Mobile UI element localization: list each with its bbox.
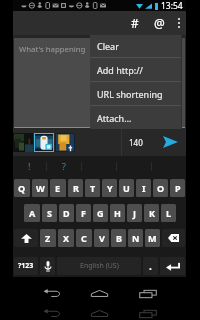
staticText: N	[132, 232, 140, 244]
button[interactable]: Facebook account	[55, 133, 75, 152]
staticText: English (US)	[80, 261, 119, 271]
button[interactable]: A	[24, 204, 40, 222]
staticText: X	[63, 232, 70, 244]
button[interactable]: K	[144, 204, 159, 222]
staticText: U	[123, 182, 130, 194]
button[interactable]: F	[76, 204, 91, 222]
staticText: W	[36, 182, 45, 194]
staticText: R	[73, 182, 79, 194]
staticText: @	[154, 15, 165, 31]
staticText: C	[81, 232, 87, 244]
staticText: K	[149, 207, 155, 219]
button[interactable]: D	[59, 204, 74, 222]
button[interactable]: Enter	[160, 257, 185, 275]
button[interactable]: Y	[102, 179, 117, 197]
button[interactable]: V	[94, 229, 109, 247]
staticText: F	[81, 207, 86, 219]
staticText: 140	[129, 137, 143, 148]
staticText: D	[63, 207, 70, 219]
staticText: Clear	[97, 40, 119, 52]
button[interactable]: X	[58, 229, 74, 247]
button[interactable]: @	[147, 11, 171, 35]
staticText: Y	[107, 182, 113, 194]
staticText: !	[28, 160, 31, 172]
staticText: Q	[18, 182, 26, 194]
button[interactable]: Clear	[90, 35, 182, 57]
button[interactable]: More options	[171, 11, 186, 35]
button[interactable]: G	[93, 204, 108, 222]
staticText: L	[166, 207, 172, 219]
staticText: ?123	[18, 261, 34, 271]
button[interactable]: ?123	[14, 257, 38, 275]
staticText: Z	[45, 232, 51, 244]
staticText: A	[29, 207, 36, 219]
button[interactable]: URL shortening	[90, 82, 182, 105]
button[interactable]: .	[143, 257, 158, 275]
button[interactable]: #	[123, 11, 147, 35]
button[interactable]: U	[119, 179, 134, 197]
button[interactable]: ?	[47, 156, 81, 176]
staticText: ?	[62, 160, 66, 172]
button[interactable]: What's happening	[14, 38, 185, 128]
staticText: E	[55, 182, 61, 194]
staticText: S	[47, 207, 52, 219]
staticText: URL shortening	[97, 88, 163, 100]
button[interactable]: Backspace	[162, 229, 185, 247]
button[interactable]: Twitter account	[35, 134, 53, 151]
staticText: P	[175, 182, 181, 194]
staticText: V	[99, 232, 105, 244]
button[interactable]: Home	[90, 289, 108, 298]
staticText: B	[116, 232, 122, 244]
staticText: .	[149, 259, 152, 273]
button[interactable]: P	[170, 179, 185, 197]
button[interactable]: M	[145, 229, 160, 247]
staticText: 13:54	[161, 0, 183, 11]
staticText: Add http://	[97, 64, 143, 76]
button[interactable]: Add http://	[90, 58, 182, 81]
staticText: M	[148, 232, 157, 244]
button[interactable]: B	[111, 229, 126, 247]
button[interactable]: R	[68, 179, 83, 197]
button[interactable]: C	[76, 229, 92, 247]
staticText: Attach…	[97, 112, 132, 124]
button[interactable]: Attach…	[90, 106, 182, 129]
button[interactable]: Shift	[14, 229, 38, 247]
button[interactable]: T	[85, 179, 100, 197]
staticText: J	[133, 207, 136, 219]
button[interactable]: Back	[43, 289, 61, 298]
button[interactable]: J	[127, 204, 142, 222]
button[interactable]: S	[42, 204, 57, 222]
button[interactable]: O	[153, 179, 168, 197]
button[interactable]: English (US)	[57, 257, 141, 275]
staticText: H	[114, 207, 121, 219]
button[interactable]: Account	[13, 133, 33, 152]
staticText: I	[142, 182, 146, 194]
button[interactable]: W	[32, 179, 48, 197]
button[interactable]: Send	[159, 128, 181, 156]
button[interactable]: Recents	[139, 289, 157, 298]
button[interactable]: Q	[14, 179, 30, 197]
button[interactable]: !	[13, 156, 46, 176]
button[interactable]: Z	[40, 229, 56, 247]
staticText: What's happening	[19, 44, 86, 55]
staticText: O	[157, 182, 165, 194]
button[interactable]: I	[136, 179, 151, 197]
button[interactable]: H	[110, 204, 125, 222]
button[interactable]: Voice input	[40, 257, 55, 275]
button[interactable]: N	[128, 229, 143, 247]
button[interactable]: L	[161, 204, 176, 222]
staticText: T	[90, 182, 96, 194]
staticText: #	[131, 15, 139, 31]
staticText: G	[97, 207, 104, 219]
button[interactable]: E	[50, 179, 66, 197]
